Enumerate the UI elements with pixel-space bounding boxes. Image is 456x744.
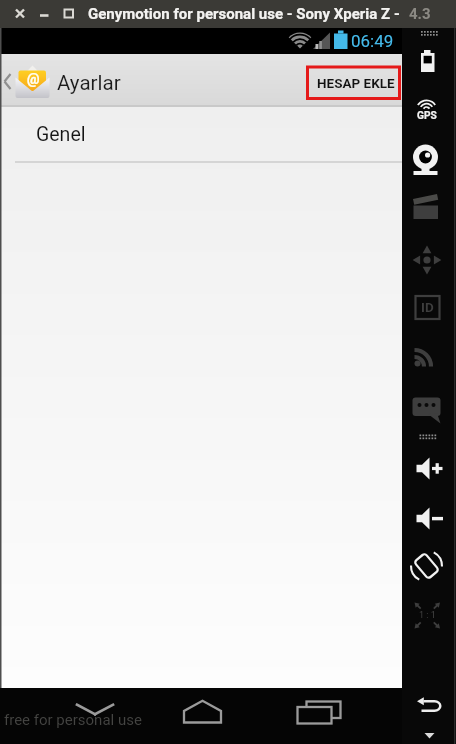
button[interactable]	[406, 502, 450, 534]
button[interactable]	[302, 58, 402, 103]
button[interactable]	[406, 452, 450, 484]
button[interactable]	[406, 44, 450, 76]
button[interactable]	[406, 548, 450, 584]
button[interactable]	[282, 692, 352, 742]
staticText: Genel	[36, 123, 86, 146]
button[interactable]	[406, 96, 450, 124]
button[interactable]	[0, 54, 56, 105]
button[interactable]	[168, 692, 238, 742]
button[interactable]	[0, 108, 402, 161]
staticText: Genymotion for personal use - Sony Xperi…	[88, 5, 400, 23]
button[interactable]	[404, 140, 450, 178]
button[interactable]	[62, 692, 128, 742]
staticText: ID	[421, 299, 434, 315]
button[interactable]	[408, 690, 452, 718]
staticText: HESAP EKLE	[317, 75, 395, 91]
staticText: GPS	[417, 110, 437, 122]
staticText: 1 : 1	[419, 610, 436, 621]
staticText: free for personal use	[4, 711, 142, 729]
staticText: @	[27, 71, 40, 87]
staticText: 4.3	[409, 5, 431, 23]
staticText: 06:49	[351, 31, 394, 51]
staticText: Ayarlar	[57, 71, 121, 95]
